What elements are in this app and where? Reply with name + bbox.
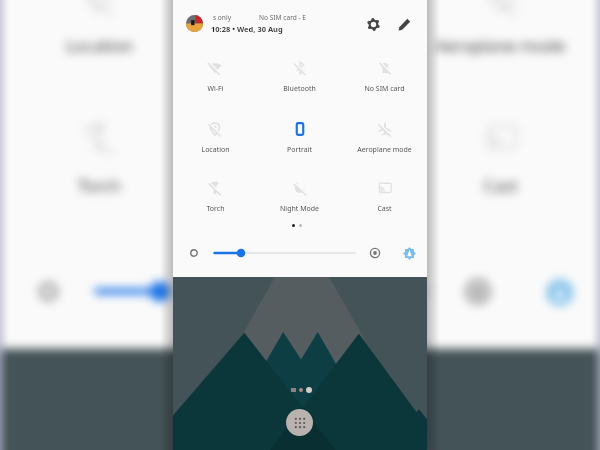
staticText: Portrait (287, 145, 312, 155)
button[interactable]: Night Mode (257, 181, 342, 214)
button[interactable]: All apps (286, 409, 313, 436)
button[interactable]: Torch (0, 121, 198, 199)
button[interactable]: Torch (173, 181, 257, 214)
staticText: Torch (206, 204, 225, 214)
staticText: Location (201, 145, 230, 155)
button[interactable]: Aeroplane mode (342, 122, 427, 155)
staticText: Wi-Fi (207, 84, 224, 94)
staticText: No SIM card (364, 84, 405, 94)
staticText: Night Mode (252, 175, 345, 199)
button[interactable]: Portrait (257, 122, 342, 155)
staticText: s only (213, 13, 232, 22)
button[interactable]: Aeroplane mode (400, 0, 600, 59)
button[interactable]: Settings (363, 14, 383, 34)
staticText: Torch (77, 175, 122, 199)
staticText: Cast (377, 204, 392, 214)
button[interactable]: Wi-Fi (173, 61, 257, 94)
button[interactable]: Cast (342, 181, 427, 214)
button[interactable]: Location (0, 0, 198, 59)
button[interactable]: Location (173, 122, 257, 155)
button[interactable]: Night Mode (198, 121, 400, 199)
staticText: 10:28 • Wed, 30 Aug (211, 24, 283, 34)
staticText: Night Mode (280, 204, 319, 214)
button[interactable]: Auto brightness (535, 268, 582, 315)
staticText: Aeroplane mode (435, 35, 566, 59)
staticText: Bluetooth (283, 84, 316, 94)
staticText: Cast (483, 175, 518, 199)
button[interactable]: Portrait (198, 0, 400, 59)
staticText: Aeroplane mode (357, 145, 412, 155)
staticText: No SIM card - E (259, 13, 306, 22)
button[interactable]: Bluetooth (257, 61, 342, 94)
staticText: Location (65, 35, 134, 59)
button[interactable]: Edit (394, 14, 414, 34)
button[interactable]: No SIM card (342, 61, 427, 94)
button[interactable]: Auto brightness (399, 243, 419, 263)
button[interactable]: Cast (400, 121, 600, 199)
